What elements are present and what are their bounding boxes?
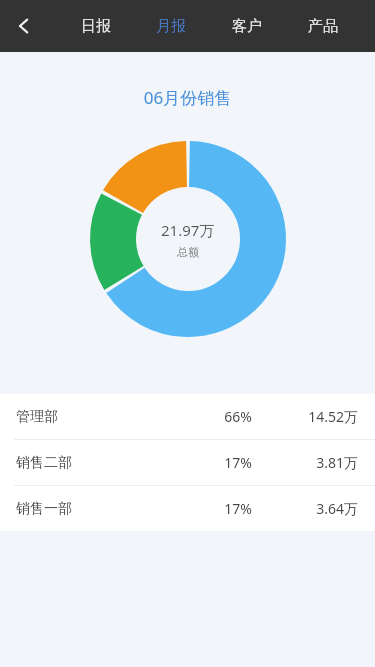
staticText: 月报 [156,17,186,36]
staticText: 3.64万 [278,499,358,518]
staticText: 06月份销售 [0,86,375,109]
button[interactable]: 客户 [209,0,285,52]
button[interactable]: 销售二部 [0,440,375,485]
staticText: 3.81万 [278,453,358,472]
button[interactable]: 管理部 [0,394,375,439]
staticText: 日报 [81,17,111,36]
staticText: 17% [198,453,278,472]
staticText: 销售二部 [16,454,198,472]
button[interactable]: 产品 [285,0,361,52]
staticText: 客户 [232,17,262,36]
staticText: 管理部 [16,408,198,426]
staticText: 产品 [308,17,338,36]
button[interactable]: 销售一部 [0,486,375,531]
button[interactable]: Back [0,2,48,50]
staticText: 14.52万 [278,407,358,426]
staticText: 销售一部 [16,500,198,518]
button[interactable]: 月报 [133,0,209,52]
staticText: 66% [198,407,278,426]
staticText: 21.97万 [161,220,215,240]
staticText: 总额 [177,245,199,259]
button[interactable]: 日报 [58,0,133,52]
staticText: 17% [198,499,278,518]
